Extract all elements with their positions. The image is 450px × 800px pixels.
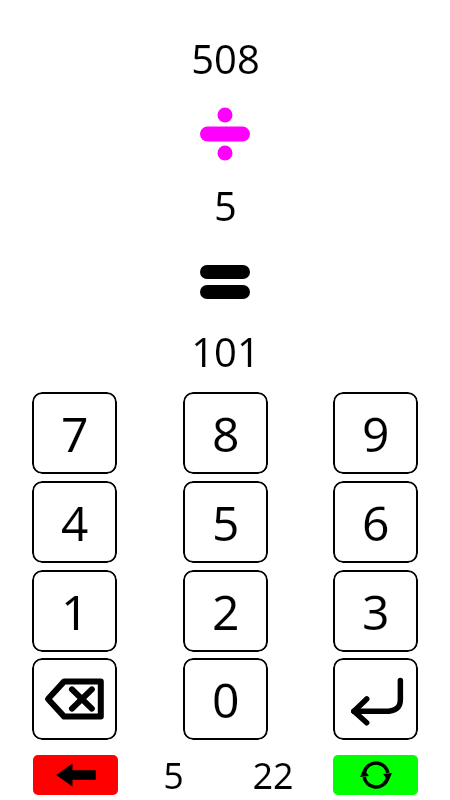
- button[interactable]: 4: [32, 481, 117, 563]
- button[interactable]: 2: [183, 570, 268, 652]
- staticText: 8: [212, 401, 240, 466]
- staticText: 0: [212, 667, 240, 732]
- button[interactable]: 9: [333, 392, 418, 474]
- staticText: 7: [61, 401, 89, 466]
- button[interactable]: Enter: [333, 658, 418, 740]
- button[interactable]: 3: [333, 570, 418, 652]
- staticText: 5: [163, 751, 184, 800]
- staticText: 6: [362, 490, 390, 555]
- staticText: 22: [252, 751, 294, 800]
- staticText: 101: [191, 324, 260, 378]
- staticText: 508: [191, 31, 260, 85]
- button[interactable]: Refresh: [333, 755, 418, 795]
- button[interactable]: 7: [32, 392, 117, 474]
- staticText: 1: [61, 579, 89, 644]
- staticText: 3: [362, 579, 390, 644]
- button[interactable]: Back: [33, 755, 118, 795]
- staticText: 9: [362, 401, 390, 466]
- staticText: 2: [212, 579, 240, 644]
- staticText: 4: [61, 490, 89, 555]
- staticText: 5: [212, 490, 240, 555]
- button[interactable]: 1: [32, 570, 117, 652]
- button[interactable]: 5: [183, 481, 268, 563]
- button[interactable]: 8: [183, 392, 268, 474]
- button[interactable]: Backspace: [32, 658, 117, 740]
- staticText: 5: [214, 178, 237, 232]
- button[interactable]: 6: [333, 481, 418, 563]
- button[interactable]: 0: [183, 658, 268, 740]
